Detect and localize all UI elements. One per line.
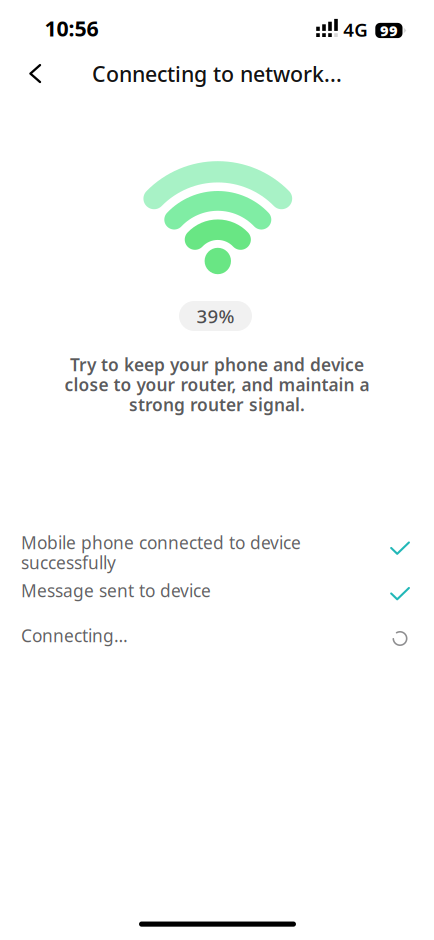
staticText: close to your router, and maintain a [64, 373, 369, 396]
staticText: 10:56 [44, 14, 98, 42]
staticText: successfully [21, 551, 116, 574]
staticText: 4G [343, 17, 368, 42]
staticText: Try to keep your phone and device [70, 353, 364, 376]
staticText: Message sent to device [21, 579, 211, 602]
staticText: Connecting to network... [92, 59, 342, 88]
staticText: 99 [380, 21, 398, 40]
staticText: Connecting… [21, 624, 128, 647]
button[interactable]: Back [15, 49, 57, 97]
staticText: strong router signal. [129, 393, 305, 416]
staticText: 39% [196, 304, 234, 328]
staticText: Mobile phone connected to device [21, 531, 301, 554]
